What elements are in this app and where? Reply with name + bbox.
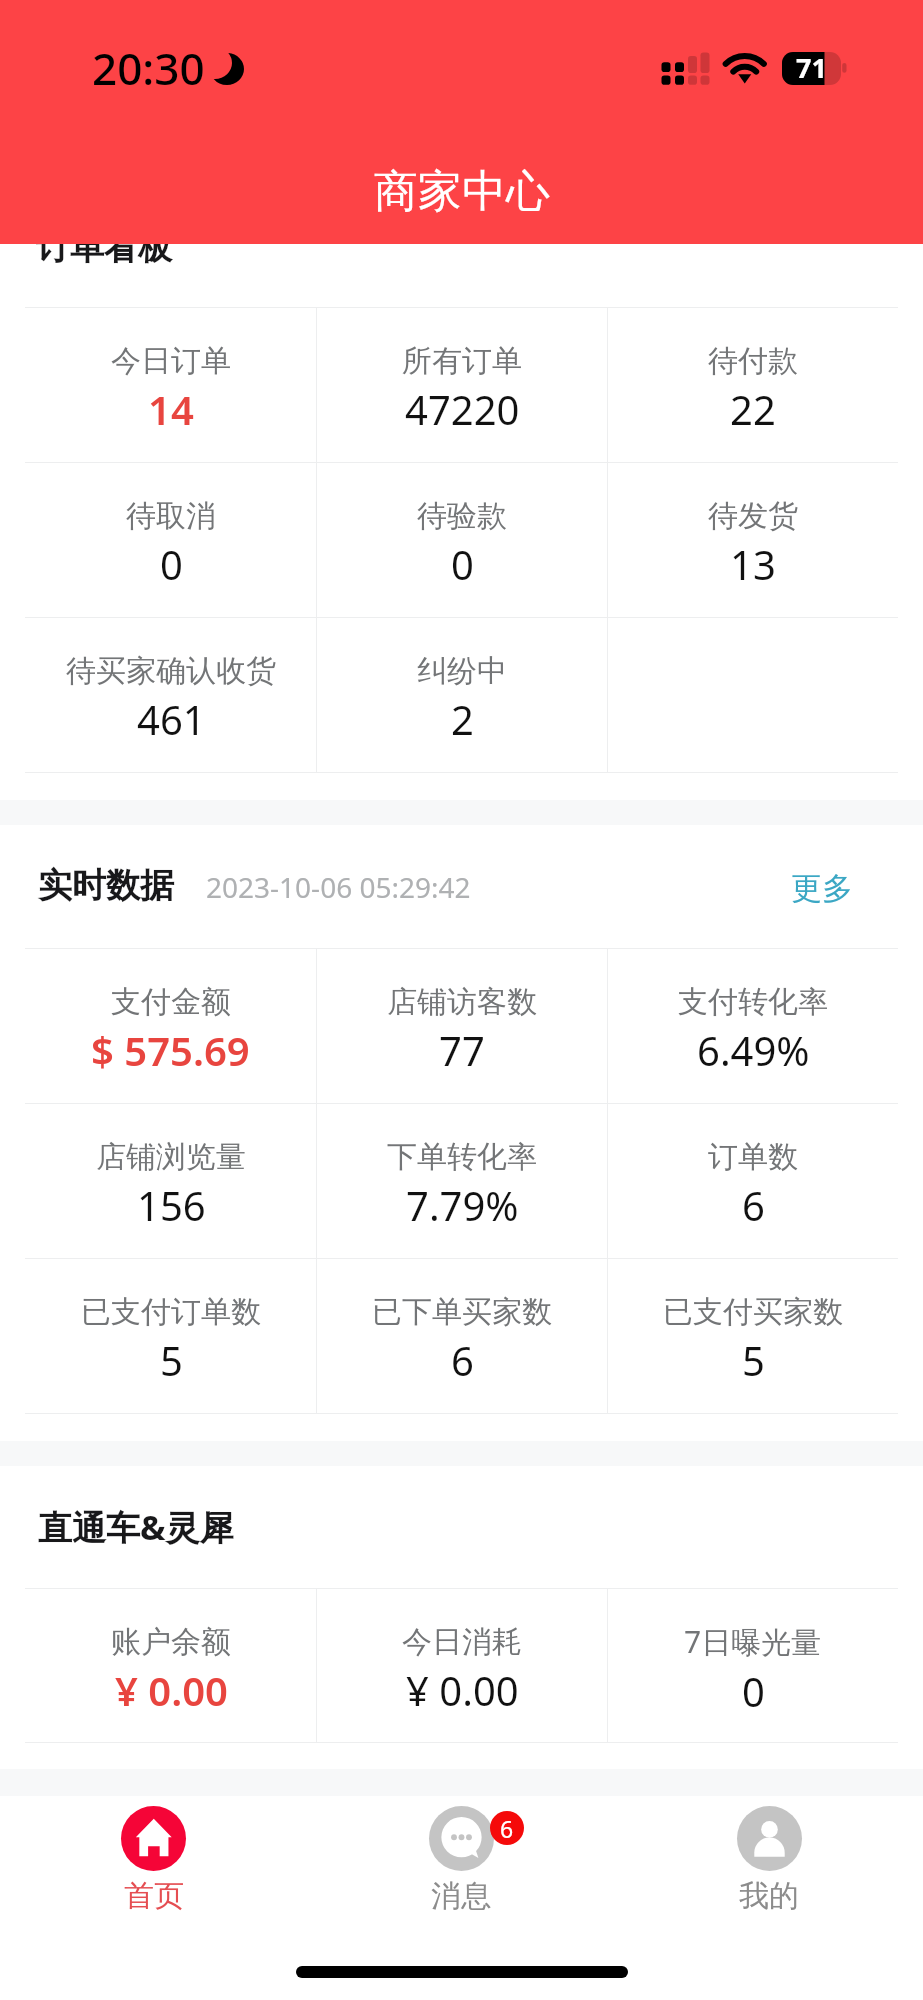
staticText: 6.49% [697, 1023, 810, 1077]
staticText: 5 [742, 1333, 765, 1387]
staticText: 今日订单 [111, 342, 231, 380]
staticText: 支付转化率 [678, 983, 828, 1021]
staticText: 店铺访客数 [387, 983, 537, 1021]
staticText: 待取消 [126, 497, 216, 535]
staticText: 77 [439, 1023, 485, 1077]
staticText: 已支付买家数 [663, 1293, 843, 1331]
staticText: 更多 [791, 869, 853, 908]
staticText: 6 [742, 1178, 765, 1232]
staticText: 156 [137, 1178, 206, 1232]
staticText: ¥ 0.00 [406, 1663, 519, 1717]
button[interactable]: 下单转化率 [317, 1104, 607, 1258]
button[interactable]: 账户余额 [25, 1589, 316, 1742]
staticText: 下单转化率 [387, 1138, 537, 1176]
button[interactable]: 待取消 [25, 463, 316, 617]
staticText: 支付金额 [111, 983, 231, 1021]
staticText: 14 [148, 382, 194, 436]
button[interactable]: 7日曝光量 [608, 1589, 898, 1742]
staticText: 6 [500, 1813, 514, 1844]
button[interactable]: 支付转化率 [608, 949, 898, 1103]
button[interactable]: 已下单买家数 [317, 1259, 607, 1413]
staticText: 0 [160, 537, 183, 591]
staticText: 461 [137, 692, 206, 746]
button[interactable]: 店铺浏览量 [25, 1104, 316, 1258]
button[interactable]: 已支付订单数 [25, 1259, 316, 1413]
button[interactable]: Profile [615, 1806, 923, 1915]
button[interactable]: Home [0, 1806, 307, 1915]
staticText: 7.79% [406, 1178, 519, 1232]
button[interactable]: 店铺访客数 [317, 949, 607, 1103]
staticText: 71 [796, 49, 827, 82]
button[interactable]: 订单数 [608, 1104, 898, 1258]
staticText: 0 [451, 537, 474, 591]
staticText: 5 [160, 1333, 183, 1387]
staticText: 0 [742, 1664, 765, 1718]
staticText: 待发货 [708, 497, 798, 535]
button[interactable]: 待发货 [608, 463, 898, 617]
staticText: 订单数 [708, 1138, 798, 1176]
staticText: 20:30 [92, 38, 205, 98]
staticText: 7日曝光量 [684, 1621, 822, 1662]
button[interactable]: 更多 [791, 825, 853, 948]
staticText: 今日消耗 [402, 1623, 522, 1661]
staticText: 6 [451, 1333, 474, 1387]
button[interactable]: 所有订单 [317, 308, 607, 462]
button[interactable]: 纠纷中 [317, 618, 607, 772]
staticText: ¥ 0.00 [115, 1663, 228, 1717]
staticText: 待付款 [708, 342, 798, 380]
button[interactable]: Messages [307, 1806, 615, 1915]
staticText: 商家中心 [374, 164, 550, 219]
staticText: 13 [730, 537, 776, 591]
staticText: 直通车&灵犀 [38, 1504, 234, 1550]
staticText: 订单看板 [36, 226, 172, 269]
staticText: 消息 [431, 1877, 491, 1915]
staticText: 实时数据 [38, 864, 174, 907]
button[interactable]: 今日订单 [25, 308, 316, 462]
staticText: 待验款 [417, 497, 507, 535]
staticText: 待买家确认收货 [66, 652, 276, 690]
staticText: 47220 [405, 382, 520, 436]
button[interactable]: 支付金额 [25, 949, 316, 1103]
staticText: 账户余额 [111, 1623, 231, 1661]
button[interactable]: 待付款 [608, 308, 898, 462]
staticText: 所有订单 [402, 342, 522, 380]
staticText: 纠纷中 [417, 652, 507, 690]
staticText: 2023-10-06 05:29:42 [206, 868, 471, 906]
staticText: 已支付订单数 [81, 1293, 261, 1331]
staticText: 店铺浏览量 [96, 1138, 246, 1176]
staticText: $ 575.69 [91, 1023, 250, 1077]
button[interactable]: 已支付买家数 [608, 1259, 898, 1413]
staticText: 已下单买家数 [372, 1293, 552, 1331]
staticText: 我的 [739, 1877, 799, 1915]
button[interactable]: 待验款 [317, 463, 607, 617]
staticText: 22 [730, 382, 776, 436]
staticText: 首页 [124, 1877, 184, 1915]
staticText: 2 [451, 692, 474, 746]
button[interactable]: 今日消耗 [317, 1589, 607, 1742]
button[interactable]: 待买家确认收货 [25, 618, 316, 772]
